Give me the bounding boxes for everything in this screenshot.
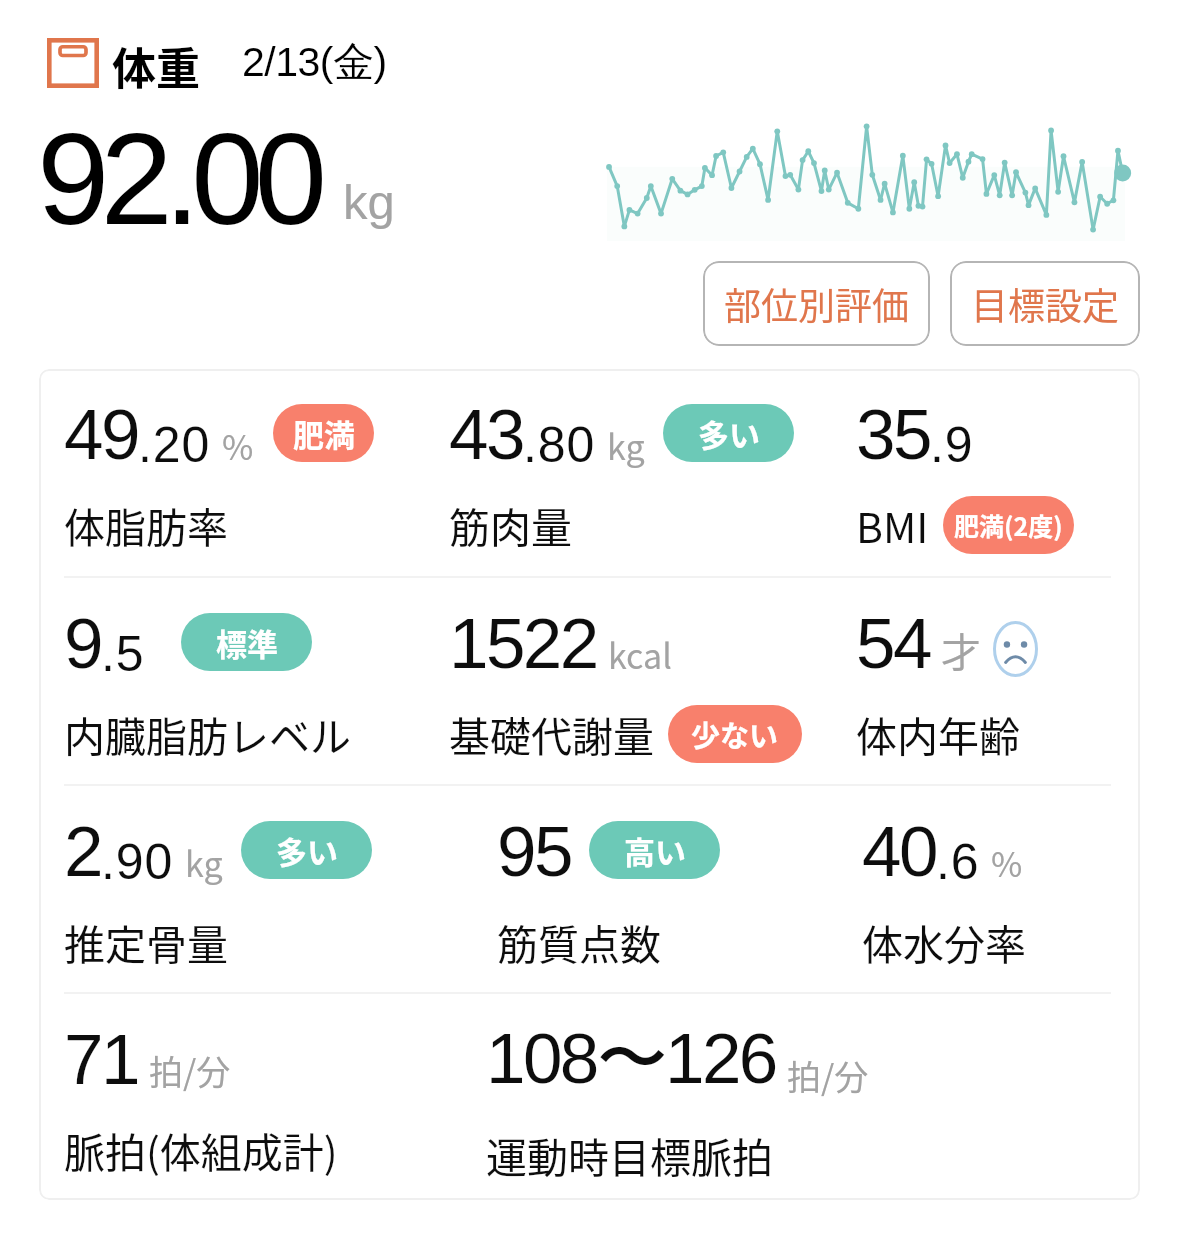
staticText: 内臓脂肪レベル bbox=[64, 704, 351, 763]
staticText: .9 bbox=[930, 417, 974, 473]
staticText: 体水分率 bbox=[862, 912, 1026, 971]
staticText: 1522 bbox=[449, 604, 597, 683]
staticText: 推定骨量 bbox=[64, 912, 228, 971]
staticText: 拍/分 bbox=[149, 1046, 231, 1095]
staticText: .90 bbox=[101, 834, 174, 890]
staticText: 筋質点数 bbox=[497, 912, 661, 971]
staticText: kcal bbox=[608, 630, 672, 679]
staticText: kg bbox=[607, 421, 645, 470]
button[interactable]: Weight history chart bbox=[607, 113, 1125, 241]
button[interactable]: 108〜126 bbox=[486, 1013, 1126, 1182]
staticText: kg bbox=[185, 838, 223, 887]
staticText: 運動時目標脈拍 bbox=[486, 1125, 773, 1184]
staticText: 2/13(金) bbox=[242, 37, 387, 89]
staticText: .6 bbox=[936, 834, 980, 890]
staticText: 肥満(2度) bbox=[954, 507, 1063, 543]
staticText: 体内年齢 bbox=[856, 704, 1020, 763]
staticText: % bbox=[222, 421, 254, 470]
staticText: kg bbox=[343, 175, 395, 230]
button[interactable]: 95 bbox=[497, 810, 862, 969]
staticText: 多い bbox=[276, 828, 338, 873]
staticText: 95 bbox=[497, 812, 571, 891]
button[interactable]: 49 bbox=[64, 393, 449, 552]
button[interactable]: 43 bbox=[449, 393, 856, 552]
staticText: 40 bbox=[862, 812, 936, 891]
button[interactable]: 40 bbox=[862, 810, 1128, 969]
staticText: 肥満 bbox=[293, 411, 355, 456]
staticText: 54 bbox=[856, 604, 930, 683]
button[interactable]: 部位別評価 bbox=[703, 261, 930, 346]
staticText: 体脂肪率 bbox=[64, 495, 228, 554]
staticText: 9 bbox=[64, 604, 101, 683]
staticText: 35 bbox=[856, 395, 930, 474]
staticText: 目標設定 bbox=[971, 277, 1119, 331]
staticText: .5 bbox=[101, 626, 145, 682]
staticText: 部位別評価 bbox=[724, 277, 909, 331]
staticText: 92.00 bbox=[37, 106, 319, 251]
staticText: 拍/分 bbox=[787, 1051, 869, 1100]
button[interactable]: 9 bbox=[64, 602, 449, 761]
staticText: 多い bbox=[698, 411, 760, 456]
staticText: 高い bbox=[624, 828, 686, 873]
button[interactable]: 35 bbox=[856, 393, 1128, 552]
staticText: 71 bbox=[64, 1020, 138, 1099]
staticText: .20 bbox=[138, 417, 211, 473]
button[interactable]: 71 bbox=[64, 1018, 486, 1177]
staticText: 108〜126 bbox=[486, 1015, 776, 1104]
staticText: 体重 bbox=[112, 34, 200, 98]
button[interactable]: 目標設定 bbox=[950, 261, 1140, 346]
staticText: 才 bbox=[941, 621, 981, 679]
staticText: 脈拍(体組成計) bbox=[64, 1120, 338, 1179]
staticText: .80 bbox=[523, 417, 596, 473]
button[interactable]: Weight scale bbox=[47, 38, 99, 88]
staticText: 2 bbox=[64, 812, 101, 891]
staticText: BMI bbox=[856, 495, 929, 554]
button[interactable]: 2 bbox=[64, 810, 497, 969]
staticText: 49 bbox=[64, 395, 138, 474]
staticText: 標準 bbox=[216, 620, 278, 665]
staticText: 筋肉量 bbox=[449, 495, 572, 554]
staticText: 43 bbox=[449, 395, 523, 474]
button[interactable]: 1522 bbox=[449, 602, 856, 761]
staticText: 基礎代謝量 bbox=[449, 704, 654, 763]
staticText: 少ない bbox=[691, 713, 779, 755]
staticText: % bbox=[991, 838, 1023, 887]
button[interactable]: 54 bbox=[856, 602, 1128, 761]
